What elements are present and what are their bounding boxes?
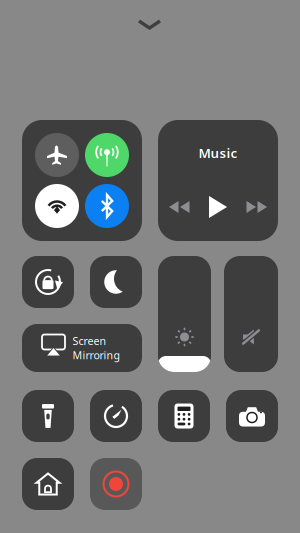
button[interactable]: Timer	[90, 390, 142, 442]
button[interactable]: Do Not Disturb	[90, 256, 142, 308]
button[interactable]: Music	[158, 120, 278, 241]
button[interactable]: Bluetooth	[85, 184, 129, 228]
staticText: Music	[198, 144, 237, 162]
button[interactable]: Screen Recording	[90, 458, 142, 510]
button[interactable]: Volume	[224, 256, 278, 372]
button[interactable]: Brightness	[158, 256, 211, 372]
button[interactable]: Camera	[226, 390, 278, 442]
button[interactable]: Cellular Data	[85, 133, 129, 177]
staticText: Screen Mirroring	[72, 334, 120, 362]
button[interactable]: Calculator	[158, 390, 210, 442]
button[interactable]: Screen Mirroring	[22, 324, 142, 372]
button[interactable]: Home	[22, 458, 74, 510]
button[interactable]: Wi-Fi	[35, 184, 79, 228]
button[interactable]: Rotation Lock	[22, 256, 74, 308]
button[interactable]: Airplane Mode	[35, 133, 79, 177]
button[interactable]: Flashlight	[22, 390, 74, 442]
